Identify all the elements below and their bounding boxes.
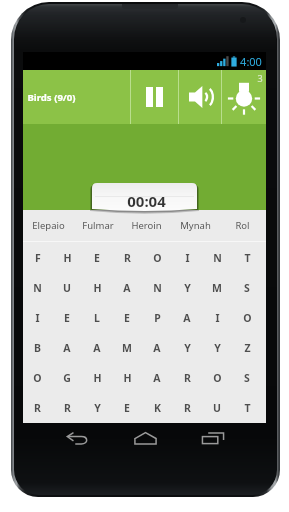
button[interactable]: Back: [43, 424, 111, 452]
button[interactable]: Y: [172, 333, 202, 363]
staticText: Y: [184, 281, 191, 295]
staticText: H: [93, 281, 102, 295]
staticText: R: [64, 401, 71, 415]
staticText: R: [124, 251, 131, 265]
button[interactable]: A: [142, 363, 172, 393]
button[interactable]: B: [23, 333, 52, 363]
button[interactable]: U: [202, 393, 232, 423]
button[interactable]: N: [202, 242, 232, 273]
staticText: T: [244, 401, 251, 415]
staticText: E: [124, 311, 130, 325]
staticText: Heroin: [131, 219, 162, 232]
button[interactable]: E: [52, 303, 82, 333]
button[interactable]: R: [52, 393, 82, 423]
staticText: 4:00: [240, 54, 262, 69]
button[interactable]: Heroin: [122, 210, 171, 241]
button[interactable]: Recents: [179, 424, 247, 452]
staticText: Y: [214, 341, 221, 355]
staticText: R: [184, 371, 191, 385]
button[interactable]: Rol: [220, 210, 264, 241]
staticText: U: [63, 281, 71, 295]
staticText: N: [213, 251, 222, 265]
staticText: B: [34, 341, 41, 355]
button[interactable]: N: [142, 273, 172, 303]
staticText: Z: [244, 341, 251, 355]
button[interactable]: O: [23, 363, 52, 393]
staticText: A: [123, 281, 131, 295]
staticText: 3: [257, 72, 263, 84]
button[interactable]: Z: [232, 333, 262, 363]
staticText: S: [244, 281, 250, 295]
staticText: A: [183, 311, 191, 325]
staticText: H: [123, 371, 132, 385]
button[interactable]: U: [52, 273, 82, 303]
button[interactable]: E: [112, 303, 142, 333]
button[interactable]: S: [232, 273, 262, 303]
button[interactable]: H: [82, 273, 112, 303]
button[interactable]: A: [52, 333, 82, 363]
button[interactable]: O: [202, 363, 232, 393]
staticText: Y: [184, 341, 191, 355]
button[interactable]: A: [172, 303, 202, 333]
button[interactable]: Pause: [131, 70, 178, 124]
button[interactable]: E: [112, 393, 142, 423]
button[interactable]: Birds (9/0): [23, 70, 130, 124]
button[interactable]: Hint: [222, 70, 266, 124]
button[interactable]: M: [202, 273, 232, 303]
staticText: N: [153, 281, 162, 295]
staticText: M: [122, 341, 132, 355]
button[interactable]: A: [82, 333, 112, 363]
staticText: Elepaio: [32, 219, 65, 232]
staticText: O: [213, 371, 222, 385]
button[interactable]: H: [82, 363, 112, 393]
button[interactable]: S: [232, 363, 262, 393]
staticText: G: [63, 371, 71, 385]
staticText: Mynah: [180, 219, 211, 232]
staticText: O: [243, 311, 252, 325]
button[interactable]: Y: [202, 333, 232, 363]
button[interactable]: G: [52, 363, 82, 393]
staticText: Rol: [235, 219, 250, 232]
staticText: R: [34, 401, 41, 415]
button[interactable]: H: [52, 242, 82, 273]
button[interactable]: E: [82, 242, 112, 273]
button[interactable]: R: [172, 363, 202, 393]
button[interactable]: H: [112, 363, 142, 393]
button[interactable]: Mynah: [171, 210, 220, 241]
staticText: A: [153, 341, 161, 355]
button[interactable]: Y: [172, 273, 202, 303]
button[interactable]: T: [232, 242, 262, 273]
staticText: 00:04: [127, 191, 166, 211]
button[interactable]: R: [23, 393, 52, 423]
staticText: H: [63, 251, 72, 265]
button[interactable]: K: [142, 393, 172, 423]
button[interactable]: Y: [82, 393, 112, 423]
button[interactable]: R: [172, 393, 202, 423]
button[interactable]: Fulmar: [73, 210, 122, 241]
staticText: O: [153, 251, 162, 265]
button[interactable]: P: [142, 303, 172, 333]
button[interactable]: N: [23, 273, 52, 303]
staticText: Fulmar: [82, 219, 114, 232]
button[interactable]: A: [142, 333, 172, 363]
staticText: F: [35, 251, 41, 265]
button[interactable]: F: [23, 242, 52, 273]
staticText: N: [33, 281, 42, 295]
staticText: U: [213, 401, 221, 415]
button[interactable]: O: [232, 303, 262, 333]
button[interactable]: T: [232, 393, 262, 423]
button[interactable]: A: [112, 273, 142, 303]
button[interactable]: L: [82, 303, 112, 333]
button[interactable]: I: [23, 303, 52, 333]
staticText: A: [93, 341, 101, 355]
button[interactable]: O: [142, 242, 172, 273]
button[interactable]: Home: [111, 424, 179, 452]
button[interactable]: M: [112, 333, 142, 363]
button[interactable]: I: [172, 242, 202, 273]
button[interactable]: Sound: [179, 70, 221, 124]
button[interactable]: R: [112, 242, 142, 273]
staticText: T: [244, 251, 251, 265]
button[interactable]: I: [202, 303, 232, 333]
button[interactable]: Elepaio: [24, 210, 73, 241]
staticText: E: [64, 311, 70, 325]
